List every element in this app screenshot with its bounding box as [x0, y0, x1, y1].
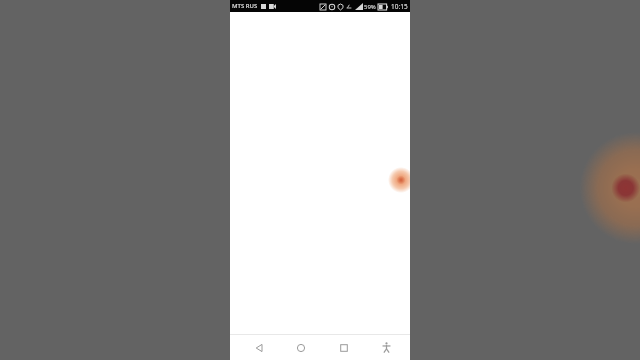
button[interactable]: Back — [238, 335, 280, 360]
button[interactable]: Recent apps — [322, 335, 365, 360]
staticText: 10:15 — [391, 2, 408, 11]
button[interactable]: Home — [280, 335, 322, 360]
staticText: MTS RUS — [232, 2, 258, 10]
button[interactable]: Accessibility — [365, 335, 408, 360]
staticText: 59% — [364, 3, 376, 11]
